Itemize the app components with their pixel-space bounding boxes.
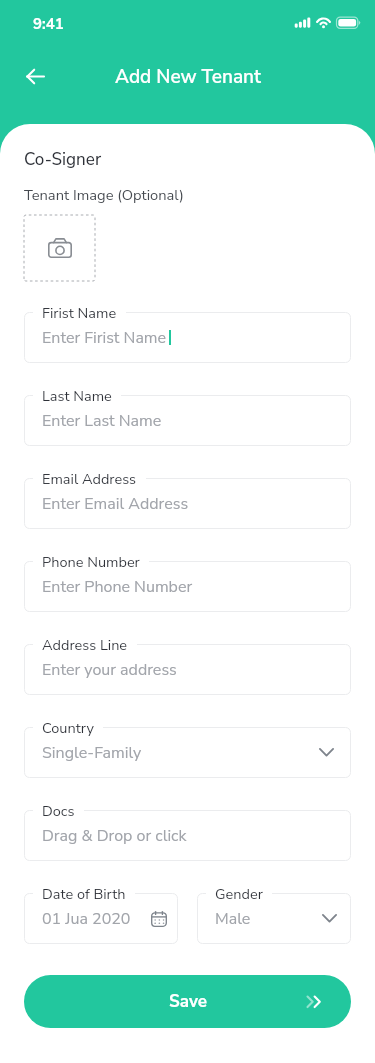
staticText: Enter Firist Name [42, 327, 167, 349]
staticText: Enter your address [42, 659, 177, 681]
button[interactable]: Add tenant image [24, 215, 95, 281]
staticText: Enter Email Address [42, 493, 189, 515]
staticText: Drag & Drop or click [42, 825, 187, 847]
staticText: Tenant Image (Optional) [24, 185, 184, 205]
staticText: Phone Number [42, 552, 140, 572]
staticText: Add New Tenant [115, 64, 261, 90]
staticText: Date of Birth [42, 884, 126, 904]
button[interactable]: Back [21, 62, 50, 91]
staticText: Gender [215, 884, 263, 904]
button[interactable]: Date of Birth [24, 893, 178, 944]
button[interactable]: Country [24, 727, 351, 778]
staticText: Last Name [42, 386, 112, 406]
staticText: Enter Phone Number [42, 576, 193, 598]
staticText: Single-Family [42, 742, 142, 764]
button[interactable]: Firist Name [24, 312, 351, 363]
button[interactable]: Phone Number [24, 561, 351, 612]
staticText: Save [169, 990, 207, 1013]
button[interactable]: Last Name [24, 395, 351, 446]
button[interactable]: Address Line [24, 644, 351, 695]
staticText: Co-Signer [24, 148, 102, 171]
button[interactable]: Save [24, 975, 351, 1028]
button[interactable]: Docs [24, 810, 351, 861]
staticText: Address Line [42, 635, 128, 655]
button[interactable]: Gender [197, 893, 351, 944]
staticText: Male [215, 908, 251, 930]
staticText: Email Address [42, 469, 137, 489]
staticText: Country [42, 718, 94, 738]
staticText: Firist Name [42, 303, 117, 323]
staticText: 9:41 [33, 14, 64, 34]
button[interactable]: Email Address [24, 478, 351, 529]
staticText: Docs [42, 801, 75, 821]
staticText: 01 Jua 2020 [42, 908, 131, 930]
staticText: Enter Last Name [42, 410, 162, 432]
